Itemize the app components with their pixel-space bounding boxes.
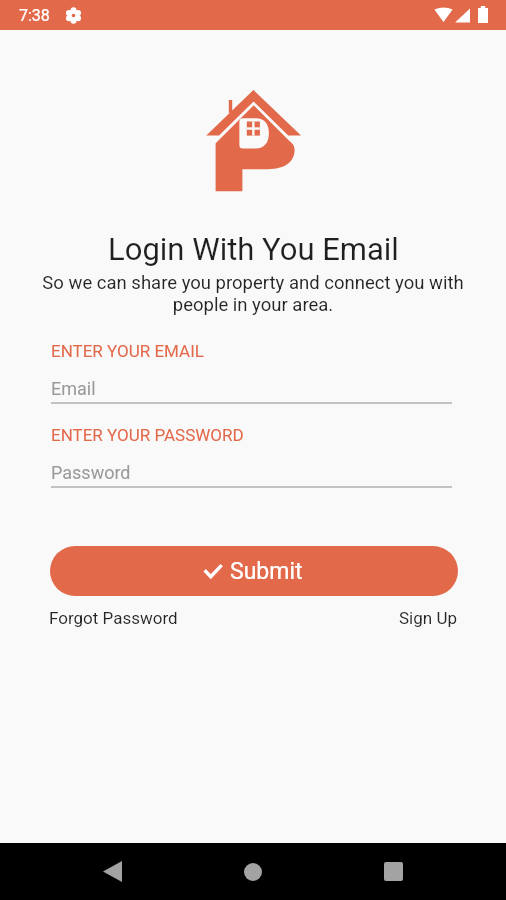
staticText: Submit — [230, 558, 303, 585]
button[interactable]: Submit — [50, 546, 458, 596]
staticText: Email — [51, 378, 96, 399]
staticText: Forgot Password — [49, 608, 178, 628]
button[interactable]: Recents — [365, 843, 421, 900]
staticText: ENTER YOUR PASSWORD — [51, 425, 244, 445]
button[interactable]: Sign Up — [399, 608, 457, 628]
button[interactable]: Back — [84, 843, 140, 900]
button[interactable]: Home — [225, 843, 281, 900]
staticText: Login With You Email — [108, 231, 399, 267]
staticText: 7:38 — [19, 6, 50, 25]
button[interactable]: Forgot Password — [49, 608, 178, 628]
staticText: So we can share you property and connect… — [18, 272, 488, 316]
staticText: ENTER YOUR EMAIL — [51, 341, 204, 361]
staticText: Sign Up — [399, 608, 457, 628]
other: Settings — [66, 8, 81, 23]
staticText: Password — [51, 462, 131, 483]
